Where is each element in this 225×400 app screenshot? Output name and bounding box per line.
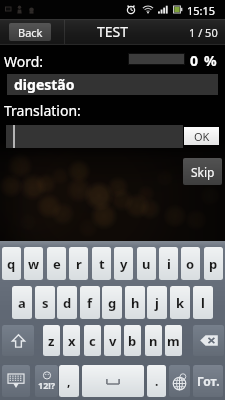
staticText: x — [68, 332, 76, 350]
button[interactable]: Гот. — [193, 365, 223, 397]
button[interactable]: w — [24, 247, 43, 280]
button[interactable]: l — [193, 286, 213, 319]
button[interactable]: Backspace — [193, 325, 224, 356]
button[interactable] — [6, 125, 183, 148]
staticText: d — [63, 294, 72, 312]
staticText: . — [155, 373, 159, 389]
staticText: y — [120, 255, 128, 273]
staticText: Word: — [4, 52, 44, 71]
button[interactable]: d — [57, 286, 77, 319]
staticText: Skip — [191, 164, 215, 180]
button[interactable]: r — [69, 247, 88, 280]
button[interactable]: o — [181, 247, 200, 280]
staticText: c — [89, 332, 96, 350]
button[interactable]: t — [92, 247, 111, 280]
staticText: h — [131, 294, 140, 312]
button[interactable]: Space — [82, 365, 144, 397]
staticText: , — [67, 373, 71, 389]
button[interactable]: x — [63, 325, 80, 356]
staticText: g — [108, 294, 117, 312]
button[interactable]: j — [147, 286, 167, 319]
button[interactable]: y — [114, 247, 133, 280]
button[interactable]: s — [35, 286, 55, 319]
button[interactable]: Shift — [2, 325, 34, 356]
staticText: v — [109, 332, 117, 350]
button[interactable]: i — [159, 247, 178, 280]
staticText: digestão — [14, 75, 75, 94]
button[interactable]: p — [204, 247, 223, 280]
button[interactable]: b — [124, 325, 141, 356]
staticText: u — [142, 255, 151, 273]
staticText: i — [167, 255, 171, 273]
button[interactable]: Symbols — [35, 365, 58, 397]
staticText: j — [155, 294, 159, 312]
button[interactable]: z — [43, 325, 60, 356]
button[interactable]: c — [84, 325, 101, 356]
staticText: f — [87, 294, 93, 312]
staticText: r — [76, 255, 82, 273]
staticText: 12!? — [38, 379, 56, 391]
button[interactable]: g — [102, 286, 122, 319]
button[interactable]: OK — [184, 127, 219, 145]
button[interactable]: f — [80, 286, 100, 319]
button[interactable]: . — [147, 365, 166, 397]
button[interactable]: n — [145, 325, 162, 356]
staticText: a — [18, 294, 26, 312]
staticText: l — [201, 294, 205, 312]
staticText: TEST — [97, 22, 129, 41]
staticText: t — [99, 255, 105, 273]
staticText: z — [48, 332, 55, 350]
staticText: n — [149, 332, 158, 350]
staticText: q — [7, 255, 16, 273]
staticText: b — [128, 332, 137, 350]
staticText: e — [53, 255, 61, 273]
staticText: Back — [18, 25, 43, 40]
button[interactable]: h — [125, 286, 145, 319]
staticText: OK — [194, 129, 210, 144]
button[interactable]: Change language — [169, 365, 190, 397]
button[interactable]: , — [59, 365, 79, 397]
staticText: 15:15 — [187, 3, 216, 18]
staticText: Translation: — [4, 101, 81, 120]
button[interactable]: q — [2, 247, 21, 280]
button[interactable]: u — [137, 247, 156, 280]
button[interactable]: m — [165, 325, 182, 356]
staticText: Гот. — [197, 373, 220, 389]
staticText: p — [209, 255, 218, 273]
staticText: 1 / 50 — [189, 25, 218, 40]
staticText: k — [176, 294, 185, 312]
staticText: o — [186, 255, 195, 273]
button[interactable]: v — [104, 325, 121, 356]
button[interactable]: k — [170, 286, 190, 319]
staticText: m — [167, 332, 180, 350]
staticText: w — [28, 255, 40, 273]
staticText: 0 — [190, 51, 199, 70]
staticText: % — [204, 51, 217, 70]
button[interactable]: e — [47, 247, 66, 280]
button[interactable]: Skip — [183, 158, 222, 185]
staticText: s — [42, 294, 49, 312]
button[interactable]: Switch keyboard — [2, 365, 30, 397]
button[interactable]: a — [12, 286, 32, 319]
button[interactable]: Back — [9, 23, 51, 41]
